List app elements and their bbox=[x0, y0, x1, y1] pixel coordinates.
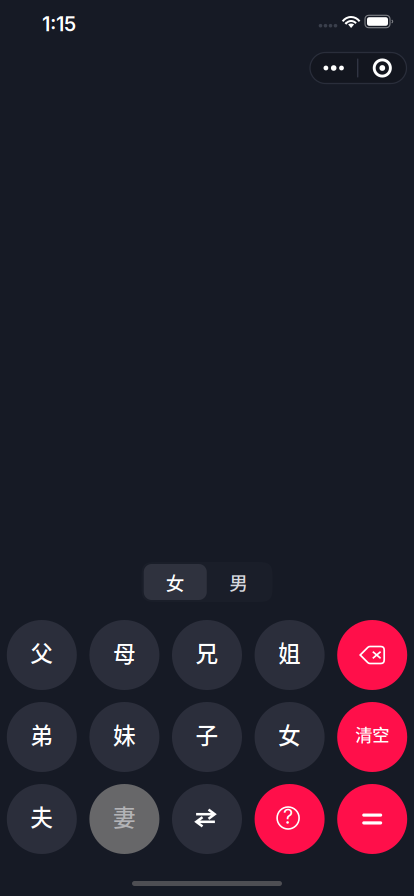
button[interactable]: 夫 bbox=[7, 784, 77, 854]
button[interactable]: 弟 bbox=[7, 702, 77, 772]
button[interactable]: 姐 bbox=[255, 620, 325, 690]
staticText: 姐 bbox=[278, 636, 301, 668]
button[interactable]: 母 bbox=[89, 620, 159, 690]
button[interactable]: 子 bbox=[172, 702, 242, 772]
button[interactable]: Delete bbox=[337, 620, 407, 690]
staticText: 兄 bbox=[195, 636, 218, 668]
staticText: 女 bbox=[278, 718, 301, 750]
staticText: 男 bbox=[229, 568, 248, 595]
staticText: 妻 bbox=[113, 800, 136, 832]
button[interactable]: 女 bbox=[255, 702, 325, 772]
staticText: 1:15 bbox=[42, 12, 76, 36]
button[interactable]: 父 bbox=[7, 620, 77, 690]
staticText: ? bbox=[283, 804, 293, 829]
staticText: 女 bbox=[166, 568, 185, 595]
button[interactable]: Help bbox=[255, 784, 325, 854]
button[interactable]: 清空 bbox=[337, 702, 407, 772]
button[interactable]: 妹 bbox=[89, 702, 159, 772]
button[interactable]: 兄 bbox=[172, 620, 242, 690]
staticText: 夫 bbox=[30, 800, 53, 832]
button[interactable]: Swap bbox=[172, 784, 242, 854]
staticText: 母 bbox=[113, 636, 136, 668]
button[interactable]: More bbox=[310, 52, 357, 83]
staticText: 弟 bbox=[30, 718, 53, 750]
button[interactable]: 妻 bbox=[89, 784, 159, 854]
staticText: 父 bbox=[30, 636, 53, 668]
button[interactable]: 女 bbox=[143, 564, 207, 600]
staticText: 子 bbox=[195, 718, 218, 750]
staticText: 妹 bbox=[113, 718, 136, 750]
button[interactable]: Equals bbox=[337, 784, 407, 854]
staticText: 清空 bbox=[355, 721, 389, 747]
button[interactable]: Close bbox=[358, 52, 406, 83]
button[interactable]: 男 bbox=[207, 564, 270, 600]
